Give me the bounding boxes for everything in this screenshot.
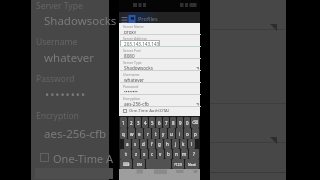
button[interactable]: Next: [185, 159, 199, 169]
staticText: Shadowsocks: [124, 65, 153, 71]
button[interactable]: Username: [119, 71, 200, 83]
button[interactable]: k: [180, 139, 187, 149]
staticText: 1: [122, 120, 125, 126]
button[interactable]: 5: [149, 117, 155, 128]
button[interactable]: m: [181, 149, 188, 159]
staticText: aes-256-cfb: [124, 101, 149, 107]
staticText: j: [175, 141, 177, 147]
button[interactable]: 0: [184, 117, 190, 128]
button[interactable]: u: [168, 128, 175, 139]
button[interactable]: 2: [128, 117, 134, 128]
staticText: l: [191, 141, 193, 147]
staticText: f: [151, 141, 153, 147]
staticText: u: [170, 131, 173, 137]
staticText: Server Type: [123, 60, 142, 65]
staticText: proxy: [124, 29, 137, 35]
button[interactable]: t: [152, 128, 159, 139]
staticText: 2: [130, 120, 133, 126]
button[interactable]: Open navigation drawer: [119, 12, 200, 23]
button[interactable]: ⇧: [120, 149, 131, 159]
button[interactable]: h: [164, 139, 171, 149]
staticText: Server Address: [123, 36, 147, 41]
button[interactable]: i: [176, 128, 183, 139]
button[interactable]: 6: [156, 117, 162, 128]
button[interactable]: Password: [119, 83, 200, 95]
staticText: i: [179, 131, 181, 137]
button[interactable]: EN: [133, 159, 145, 169]
staticText: s: [134, 141, 137, 147]
button[interactable]: Server Port: [119, 47, 200, 59]
button[interactable]: ?: [189, 149, 199, 159]
button[interactable]: e: [136, 128, 143, 139]
staticText: r: [147, 131, 149, 137]
staticText: Encryption: [123, 96, 141, 101]
staticText: Password: [36, 73, 75, 85]
staticText: whatever: [124, 77, 145, 83]
button[interactable]: g: [156, 139, 163, 149]
button[interactable]: 7: [163, 117, 169, 128]
staticText: One-Time Auth(OTA): [129, 108, 169, 114]
button[interactable]: y: [160, 128, 167, 139]
staticText: d: [142, 141, 145, 147]
button[interactable]: x: [141, 149, 148, 159]
staticText: 9: [179, 120, 182, 126]
staticText: 7: [165, 120, 168, 126]
staticText: b: [167, 151, 170, 157]
button[interactable]: Server Type: [119, 59, 200, 71]
staticText: EN: [137, 162, 142, 167]
staticText: Shadowsocks: [44, 13, 117, 29]
staticText: p: [194, 131, 197, 137]
button[interactable]: 3: [135, 117, 141, 128]
button[interactable]: j: [172, 139, 179, 149]
button[interactable]: c: [149, 149, 156, 159]
button[interactable]: s: [132, 139, 139, 149]
button[interactable]: v: [157, 149, 164, 159]
staticText: One-Time A: [53, 151, 114, 166]
staticText: q: [122, 131, 125, 137]
button[interactable]: ?123: [172, 159, 184, 169]
staticText: e: [138, 131, 141, 137]
button[interactable]: z: [132, 149, 140, 159]
button[interactable]: 9: [177, 117, 183, 128]
staticText: h: [166, 141, 169, 147]
button[interactable]: Server Name: [119, 23, 200, 35]
staticText: ••••••••: [45, 87, 87, 102]
staticText: w: [130, 131, 134, 137]
staticText: ⌫: [192, 120, 199, 125]
button[interactable]: One-Time Auth(OTA): [119, 107, 200, 115]
staticText: 3: [137, 120, 140, 126]
button[interactable]: b: [165, 149, 172, 159]
button[interactable]: ⌫: [191, 117, 199, 128]
staticText: c: [151, 151, 154, 157]
staticText: ?: [193, 151, 195, 157]
staticText: whatever: [44, 50, 95, 66]
button[interactable]: 4: [142, 117, 148, 128]
staticText: Password: [123, 84, 139, 89]
button[interactable]: n: [173, 149, 180, 159]
button[interactable]: 8: [170, 117, 176, 128]
button[interactable]: a: [124, 139, 131, 149]
staticText: 8080: [124, 53, 135, 59]
staticText: k: [182, 141, 185, 147]
staticText: aes-256-cfb: [44, 126, 107, 142]
staticText: ••••••••: [124, 89, 138, 95]
button[interactable]: l: [188, 139, 195, 149]
button[interactable]: ⌨: [120, 159, 132, 169]
button[interactable]: Server Address: [119, 35, 200, 47]
button[interactable]: w: [128, 128, 135, 139]
button[interactable]: f: [148, 139, 155, 149]
button[interactable]: Encryption: [119, 95, 200, 107]
button[interactable]: Open navigation drawer: [121, 15, 128, 22]
staticText: Profiles: [138, 15, 158, 22]
staticText: ?123: [174, 162, 182, 167]
staticText: t: [155, 131, 157, 137]
button[interactable]: r: [144, 128, 151, 139]
staticText: 203.143.143.143: [124, 41, 160, 47]
button[interactable]: o: [184, 128, 191, 139]
button[interactable]: p: [192, 128, 199, 139]
button[interactable]: q: [120, 128, 127, 139]
button[interactable]: 1: [120, 117, 127, 128]
button[interactable]: d: [140, 139, 147, 149]
staticText: 5: [151, 120, 154, 126]
